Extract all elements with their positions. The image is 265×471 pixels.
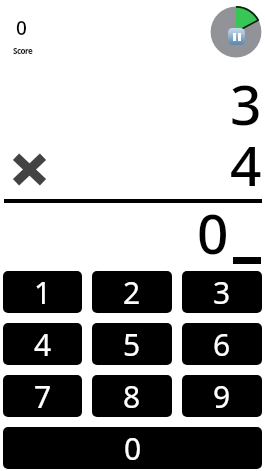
staticText: 0 bbox=[16, 15, 27, 41]
button[interactable]: 3 bbox=[182, 271, 262, 313]
button[interactable]: 0 bbox=[3, 427, 262, 469]
staticText: 4 bbox=[230, 127, 262, 202]
staticText: Score bbox=[13, 45, 33, 56]
staticText: 2 bbox=[123, 272, 141, 313]
button[interactable]: 6 bbox=[182, 323, 262, 365]
staticText: 4 bbox=[34, 324, 52, 365]
button[interactable]: 4 bbox=[3, 323, 82, 365]
staticText: 0 bbox=[124, 428, 142, 469]
staticText: 6 bbox=[213, 324, 231, 365]
button[interactable]: 8 bbox=[92, 375, 172, 417]
button[interactable]: 0 bbox=[13, 13, 59, 59]
staticText: 9 bbox=[213, 376, 231, 417]
button[interactable]: 5 bbox=[92, 323, 172, 365]
button[interactable]: Pause timer bbox=[210, 6, 262, 58]
staticText: 0 bbox=[197, 195, 229, 270]
staticText: 7 bbox=[34, 376, 52, 417]
button[interactable]: 7 bbox=[3, 375, 82, 417]
staticText: 5 bbox=[123, 324, 141, 365]
button[interactable]: 9 bbox=[182, 375, 262, 417]
button[interactable]: 2 bbox=[92, 271, 172, 313]
button[interactable]: 1 bbox=[3, 271, 82, 313]
staticText: 8 bbox=[123, 376, 141, 417]
staticText: 3 bbox=[230, 66, 262, 141]
staticText: 3 bbox=[213, 272, 231, 313]
staticText: 1 bbox=[34, 272, 52, 313]
